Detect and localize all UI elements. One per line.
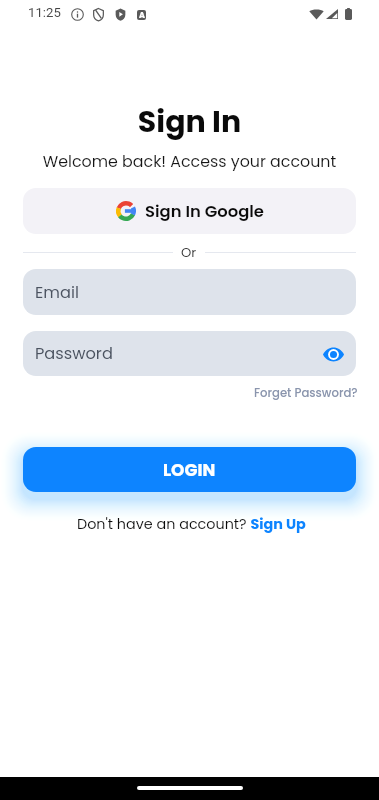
button[interactable]: Don't have an account? Sign Up [77,514,306,534]
staticText: Email [35,281,79,304]
button[interactable]: Forget Password? [254,385,358,401]
button[interactable]: Show password [321,342,345,366]
button[interactable]: Email [23,269,356,315]
button[interactable]: LOGIN [23,447,356,492]
button[interactable]: Password [23,331,356,376]
button[interactable]: Sign In Google [23,188,356,234]
staticText: Sign In [23,101,356,143]
staticText: Password [35,342,113,365]
staticText: LOGIN [163,458,216,482]
staticText: 11:25 [28,5,61,20]
staticText: Welcome back! Access your account [23,150,356,172]
staticText: Or [181,243,197,261]
staticText: Sign In Google [145,200,264,223]
staticText: A [139,10,145,20]
